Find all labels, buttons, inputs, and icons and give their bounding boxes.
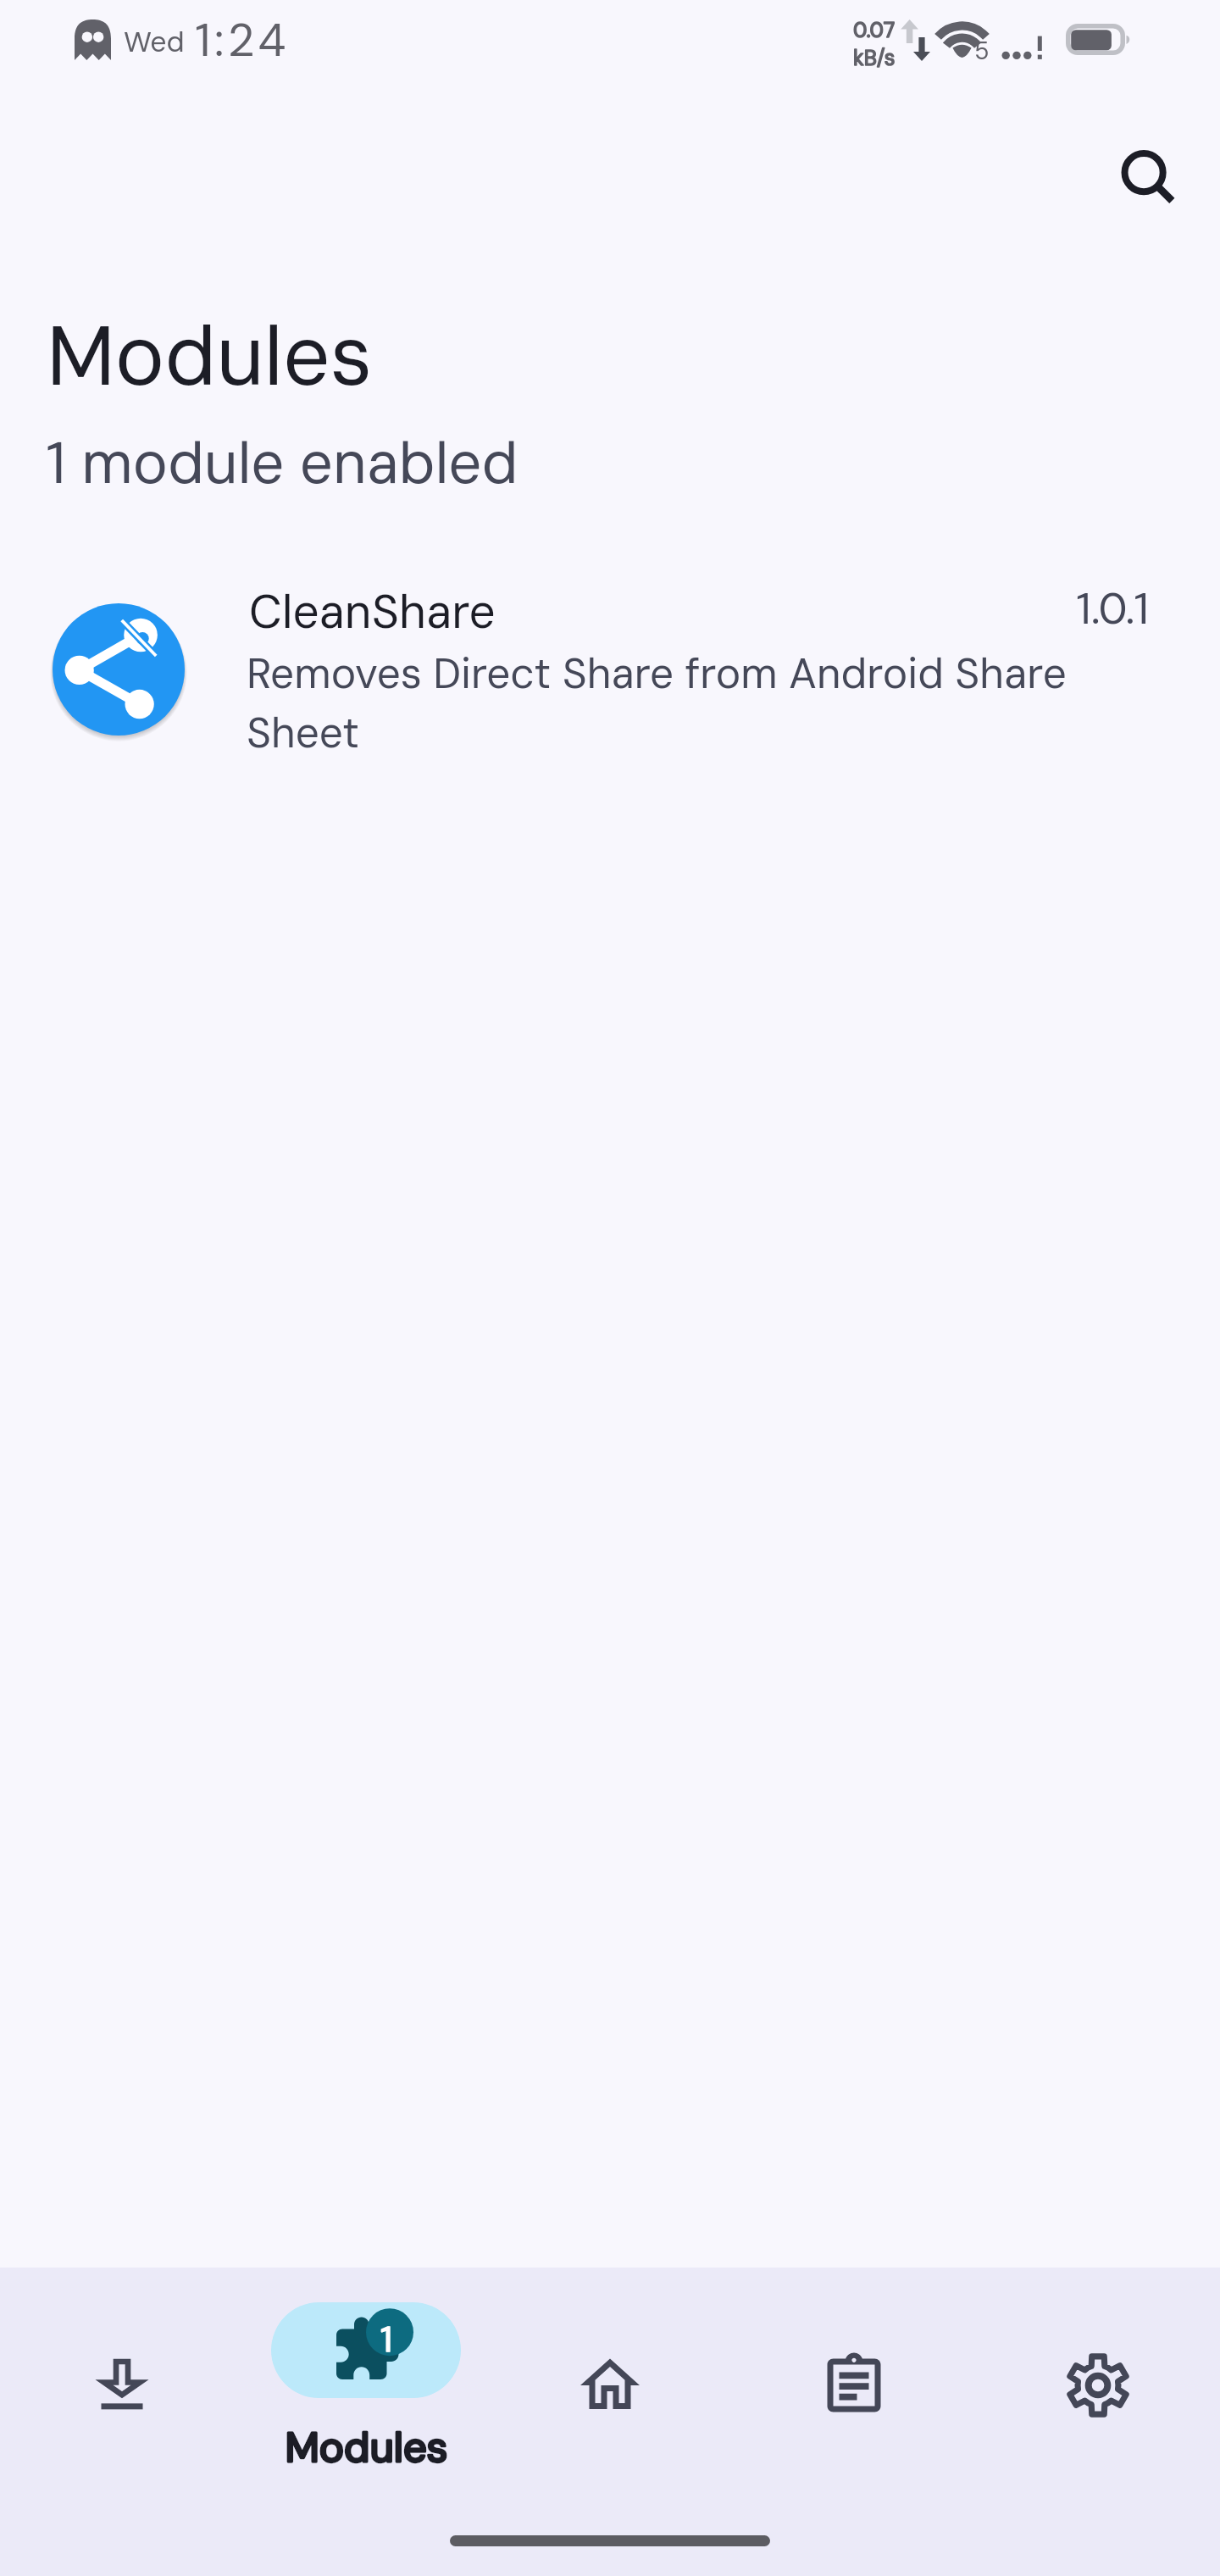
staticText: Wed <box>124 23 185 60</box>
staticText: 0.07 <box>853 16 896 44</box>
staticText: 1.0.1 <box>1076 580 1149 637</box>
button[interactable]: Home <box>488 2274 732 2501</box>
button[interactable]: CleanShare <box>0 569 1220 763</box>
staticText: Modules <box>285 2420 448 2474</box>
staticText: 1:24 <box>195 10 290 69</box>
staticText: Modules <box>47 303 373 411</box>
staticText: Removes Direct Share from Android Share … <box>247 647 1094 760</box>
staticText: Modules <box>285 2420 448 2474</box>
button[interactable]: Downloads <box>0 2274 244 2501</box>
staticText: CleanShare <box>249 581 496 642</box>
staticText: 1 <box>380 2317 393 2362</box>
staticText: kB/s <box>853 44 896 72</box>
button[interactable]: Settings <box>976 2274 1220 2501</box>
button[interactable]: Search <box>1076 105 1220 249</box>
staticText: 1 <box>380 2317 393 2362</box>
staticText: 1 module enabled <box>46 425 518 502</box>
staticText: kB/s <box>853 44 896 72</box>
button[interactable]: Logs <box>732 2274 976 2501</box>
staticText: 5 <box>974 35 990 67</box>
button[interactable]: Modules <box>244 2274 488 2501</box>
staticText: 0.07 <box>853 16 896 44</box>
